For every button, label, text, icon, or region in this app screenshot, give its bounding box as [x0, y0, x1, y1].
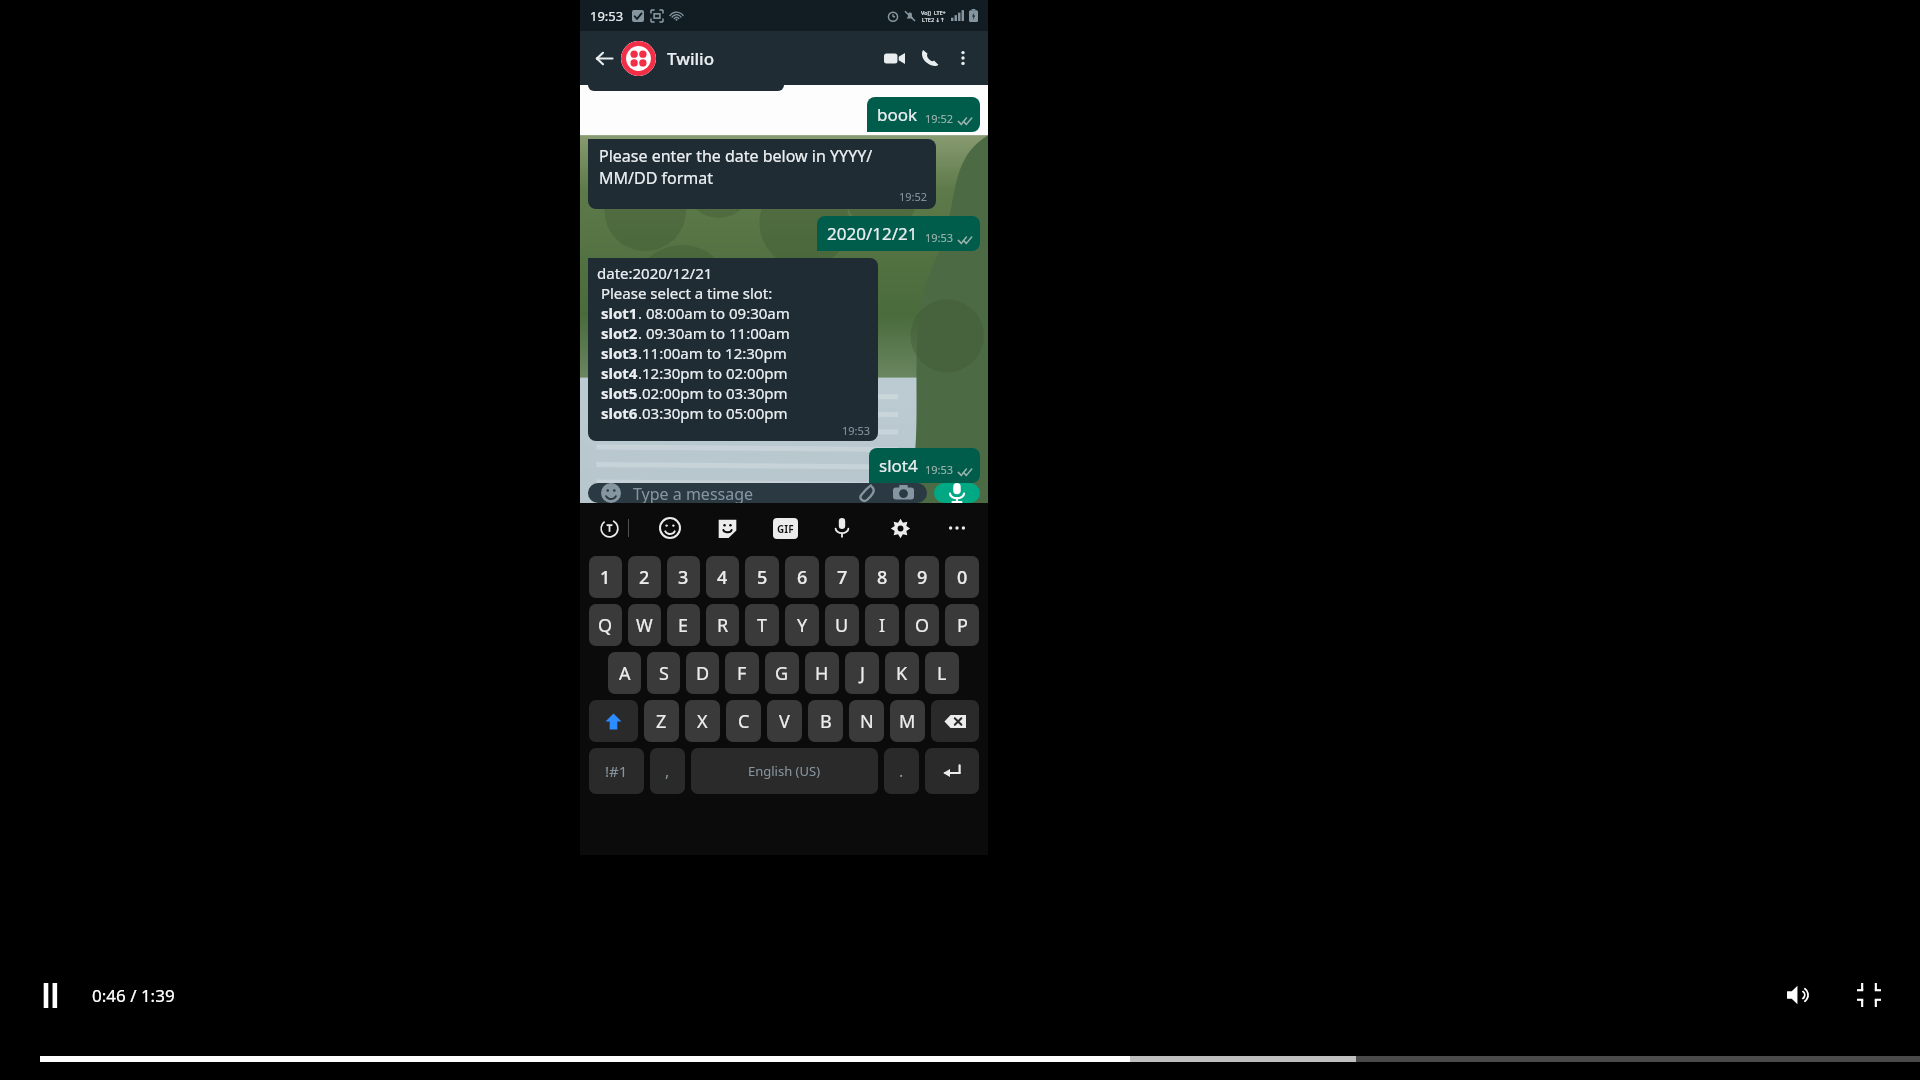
button[interactable]: D [686, 652, 719, 694]
staticText: Type a message [633, 483, 754, 503]
button[interactable]: 9 [905, 556, 939, 598]
staticText: 6 [797, 565, 808, 590]
staticText: O [915, 613, 930, 638]
button[interactable]: 2 [628, 556, 661, 598]
button[interactable]: X [685, 700, 720, 742]
button[interactable]: 8 [865, 556, 899, 598]
staticText: slot3 [597, 343, 638, 363]
staticText: MM/DD format [599, 167, 714, 189]
button[interactable]: 6 [785, 556, 819, 598]
staticText: M [899, 709, 916, 734]
button[interactable]: Keyboard settings [883, 511, 917, 545]
staticText: Vo)) LTE+ [921, 9, 946, 16]
button[interactable]: L [925, 652, 959, 694]
button[interactable]: date:2020/12/21 [588, 258, 878, 441]
button[interactable]: book [867, 97, 980, 132]
button[interactable]: Attach [854, 483, 880, 503]
staticText: I [879, 613, 886, 638]
staticText: slot5 [597, 383, 638, 403]
staticText: LTE2 ↓↑ [922, 16, 945, 23]
staticText: B [820, 709, 832, 734]
button[interactable]: 7 [825, 556, 859, 598]
staticText: Z [656, 709, 667, 734]
button[interactable]: GIF [768, 511, 802, 545]
staticText: , [665, 760, 670, 782]
staticText: N [860, 709, 874, 734]
button[interactable]: W [628, 604, 661, 646]
staticText: Please select a time slot: [597, 283, 773, 303]
button[interactable]: , [650, 748, 685, 794]
button[interactable]: . [884, 748, 919, 794]
button[interactable]: V [767, 700, 802, 742]
button[interactable]: Voice input [825, 511, 859, 545]
button[interactable]: Twilio profile photo [621, 41, 656, 76]
button[interactable]: Emoji [653, 511, 687, 545]
button[interactable]: Pause [30, 975, 70, 1015]
button[interactable]: Backspace [931, 700, 979, 742]
button[interactable]: 2020/12/21 [817, 216, 980, 251]
button[interactable]: 4 [706, 556, 739, 598]
button[interactable]: 5 [745, 556, 779, 598]
button[interactable]: R [706, 604, 739, 646]
staticText: X [697, 709, 708, 734]
button[interactable]: Enter [925, 748, 979, 794]
button[interactable]: P [945, 604, 979, 646]
button[interactable]: S [647, 652, 680, 694]
button[interactable]: Please enter the date below in YYYY/ [588, 139, 936, 209]
button[interactable]: Stickers [710, 511, 744, 545]
button[interactable]: T [745, 604, 779, 646]
button[interactable]: U [825, 604, 859, 646]
button[interactable]: Voice call [912, 40, 948, 76]
button[interactable]: M [890, 700, 925, 742]
button[interactable]: slot4 [869, 448, 980, 483]
button[interactable]: Z [644, 700, 679, 742]
button[interactable]: !#1 [589, 748, 644, 794]
button[interactable]: G [765, 652, 799, 694]
button[interactable]: Record voice message [934, 483, 980, 503]
button[interactable]: Shift [589, 700, 638, 742]
button[interactable]: Twilio [667, 47, 715, 70]
button[interactable]: Emoji [599, 483, 623, 503]
button[interactable]: B [808, 700, 843, 742]
button[interactable]: E [667, 604, 700, 646]
staticText: J [860, 661, 865, 686]
button[interactable]: Translate [594, 513, 624, 543]
button[interactable]: More [940, 511, 974, 545]
staticText: Please enter the date below in YYYY/ [599, 145, 873, 167]
staticText: C [738, 709, 750, 734]
button[interactable]: Exit full screen [1848, 974, 1890, 1016]
staticText: 7 [837, 565, 848, 590]
button[interactable]: F [725, 652, 759, 694]
staticText: date:2020/12/21 [597, 263, 713, 283]
button[interactable]: Q [589, 604, 622, 646]
button[interactable]: Back [589, 43, 619, 73]
button[interactable]: 3 [667, 556, 700, 598]
button[interactable]: 1 [589, 556, 622, 598]
button[interactable]: K [885, 652, 919, 694]
staticText: W [636, 613, 653, 638]
button[interactable]: 0 [945, 556, 979, 598]
staticText: A [619, 661, 631, 686]
button[interactable]: Video call [876, 40, 912, 76]
button[interactable]: J [845, 652, 879, 694]
staticText: slot2 [597, 323, 638, 343]
button[interactable]: Camera [890, 483, 916, 503]
button[interactable]: English (US) [691, 748, 878, 794]
staticText: 1 [600, 565, 611, 590]
button[interactable]: Volume [1778, 974, 1820, 1016]
button[interactable]: C [726, 700, 761, 742]
button[interactable]: A [608, 652, 641, 694]
staticText: 0 [957, 565, 968, 590]
button[interactable]: I [865, 604, 899, 646]
button[interactable]: H [805, 652, 839, 694]
button[interactable]: Emoji [588, 483, 927, 503]
staticText: 0:46 / 1:39 [92, 984, 175, 1007]
staticText: slot1 [597, 303, 638, 323]
button[interactable]: N [849, 700, 884, 742]
staticText: 8 [877, 565, 888, 590]
button[interactable]: Y [785, 604, 819, 646]
staticText: . 08:00am to 09:30am [638, 303, 790, 323]
button[interactable]: O [905, 604, 939, 646]
button[interactable]: More options [948, 43, 978, 73]
staticText: . 09:30am to 11:00am [638, 323, 790, 343]
